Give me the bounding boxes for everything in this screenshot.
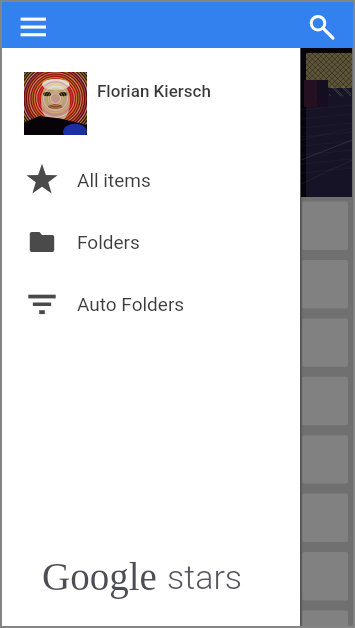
staticText: All items (77, 169, 151, 191)
button[interactable]: Florian Kiersch (2, 50, 300, 155)
button[interactable]: All items (2, 149, 300, 211)
staticText: stars (167, 557, 243, 597)
button[interactable]: Open navigation drawer (11, 2, 55, 46)
staticText: Auto Folders (77, 293, 185, 315)
button[interactable]: Search (298, 2, 342, 46)
staticText: Google (42, 555, 157, 598)
button[interactable]: Folders (2, 211, 300, 273)
button[interactable]: Auto Folders (2, 273, 300, 335)
staticText: Folders (77, 231, 140, 253)
staticText: Florian Kiersch (97, 81, 211, 101)
